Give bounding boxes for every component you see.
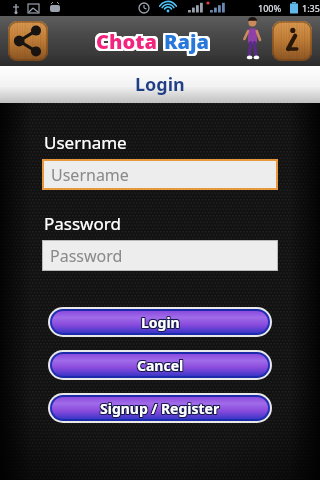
staticText: Chota <box>98 27 159 54</box>
staticText: Chota <box>95 29 156 56</box>
staticText: Chota <box>97 27 158 54</box>
staticText: Chota <box>95 30 156 57</box>
staticText: 1:35 <box>302 2 320 14</box>
staticText: Cancel <box>137 356 184 375</box>
staticText: Signup / Register <box>100 400 220 419</box>
staticText: Raja <box>163 27 208 54</box>
staticText: 100% <box>258 2 282 14</box>
staticText: Chota <box>96 30 157 57</box>
staticText: Signup / Register <box>100 399 220 418</box>
staticText: Login <box>140 312 179 331</box>
staticText: Raja <box>164 30 209 57</box>
staticText: Cancel <box>137 357 184 376</box>
staticText: Chota <box>95 28 156 55</box>
staticText: Raja <box>162 28 207 55</box>
staticText: Cancel <box>137 355 184 374</box>
staticText: Raja <box>164 26 209 53</box>
staticText: Raja <box>165 26 210 53</box>
staticText: Signup / Register <box>99 399 219 418</box>
staticText: Chota <box>98 26 159 53</box>
staticText: Chota <box>95 26 156 53</box>
staticText: Raja <box>163 29 208 56</box>
staticText: Raja <box>162 29 207 56</box>
staticText: Signup / Register <box>101 399 221 418</box>
button[interactable]: Cancel <box>52 354 268 376</box>
staticText: Cancel <box>138 356 185 375</box>
staticText: Raja <box>165 29 210 56</box>
staticText: Chota <box>98 29 159 56</box>
staticText: Chota <box>97 29 158 56</box>
staticText: Login <box>135 72 185 97</box>
staticText: Login <box>141 312 180 331</box>
staticText: Signup / Register <box>101 400 221 419</box>
button[interactable]: Signup / Register <box>52 397 268 419</box>
staticText: Cancel <box>136 356 183 375</box>
staticText: Signup / Register <box>100 398 220 417</box>
staticText: Raja <box>166 27 211 54</box>
staticText: Raja <box>166 28 211 55</box>
staticText: Chota <box>97 28 158 55</box>
staticText: Signup / Register <box>99 400 219 419</box>
staticText: Login <box>142 313 181 332</box>
staticText: Raja <box>166 29 211 56</box>
staticText: Raja <box>165 27 210 54</box>
staticText: Chota <box>94 27 155 54</box>
staticText: Chota <box>96 29 157 56</box>
staticText: Raja <box>162 30 207 57</box>
staticText: Signup / Register <box>101 398 221 417</box>
staticText: Chota <box>96 28 157 55</box>
staticText: Password <box>44 212 121 235</box>
button[interactable]: Username <box>44 161 276 188</box>
staticText: Login <box>140 314 179 333</box>
staticText: Chota <box>95 27 156 54</box>
staticText: Username <box>44 131 127 154</box>
staticText: Login <box>140 313 179 332</box>
staticText: Cancel <box>136 357 183 376</box>
staticText: Chota <box>94 26 155 53</box>
staticText: Chota <box>96 26 157 53</box>
staticText: Login <box>142 314 181 333</box>
staticText: Chota <box>97 26 158 53</box>
staticText: Raja <box>163 28 208 55</box>
staticText: Chota <box>96 27 157 54</box>
staticText: Login <box>141 313 180 332</box>
staticText: Chota <box>98 28 159 55</box>
staticText: Raja <box>164 29 209 56</box>
staticText: Raja <box>164 27 209 54</box>
staticText: Password <box>50 245 123 267</box>
button[interactable]: Info <box>272 21 312 61</box>
button[interactable]: Password <box>43 241 277 270</box>
staticText: Cancel <box>136 355 183 374</box>
staticText: Raja <box>166 26 211 53</box>
staticText: Chota <box>94 30 155 57</box>
staticText: Chota <box>97 30 158 57</box>
staticText: Chota <box>94 28 155 55</box>
staticText: Login <box>141 314 180 333</box>
staticText: Chota <box>98 30 159 57</box>
staticText: Raja <box>166 30 211 57</box>
button[interactable]: Login <box>52 311 268 333</box>
staticText: Raja <box>163 26 208 53</box>
staticText: Signup / Register <box>99 398 219 417</box>
staticText: Raja <box>162 27 207 54</box>
staticText: Raja <box>162 26 207 53</box>
staticText: Username <box>51 164 129 186</box>
staticText: Raja <box>163 30 208 57</box>
staticText: Login <box>142 312 181 331</box>
staticText: Chota <box>94 29 155 56</box>
staticText: Cancel <box>138 355 185 374</box>
button[interactable]: Share <box>8 21 48 61</box>
staticText: Raja <box>165 30 210 57</box>
staticText: Raja <box>165 28 210 55</box>
staticText: Raja <box>164 28 209 55</box>
staticText: Cancel <box>138 357 185 376</box>
